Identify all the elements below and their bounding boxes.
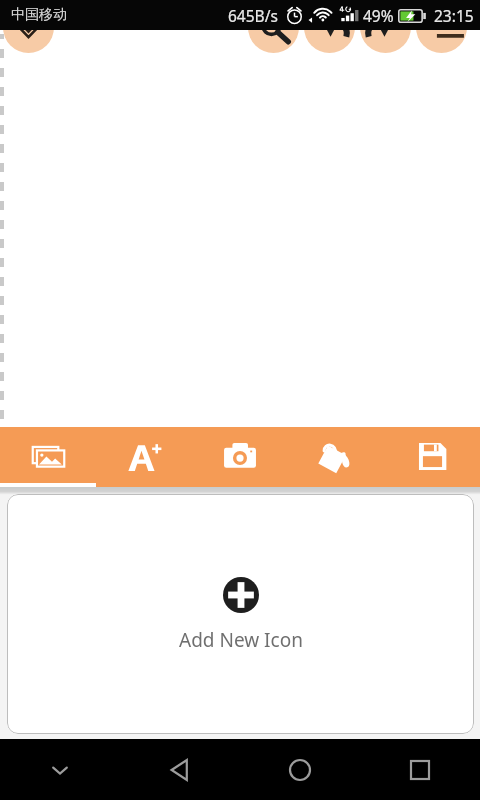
button[interactable]: Save bbox=[384, 427, 480, 487]
button[interactable]: Home bbox=[240, 739, 360, 800]
button[interactable]: Camera bbox=[192, 427, 288, 487]
button[interactable]: Collapse toolbar bbox=[3, 2, 54, 53]
button[interactable]: Fill colour bbox=[288, 427, 384, 487]
button[interactable]: More options bbox=[416, 2, 467, 53]
button[interactable]: Redo bbox=[360, 2, 411, 53]
button[interactable]: Zoom bbox=[248, 2, 299, 53]
staticText: 23:15 bbox=[434, 5, 474, 26]
button[interactable]: Add text bbox=[96, 427, 192, 487]
button[interactable]: Gallery bbox=[0, 427, 96, 487]
button[interactable]: Recents bbox=[360, 739, 480, 800]
staticText: 645B/s bbox=[228, 5, 278, 26]
staticText: 49% bbox=[363, 5, 394, 26]
button[interactable]: Add New Icon bbox=[7, 494, 474, 734]
button[interactable]: Hide keyboard bbox=[0, 739, 120, 800]
staticText: 中国移动 bbox=[11, 6, 67, 24]
button[interactable]: Back bbox=[120, 739, 240, 800]
staticText: Add New Icon bbox=[179, 627, 303, 653]
button[interactable]: Undo bbox=[304, 2, 355, 53]
